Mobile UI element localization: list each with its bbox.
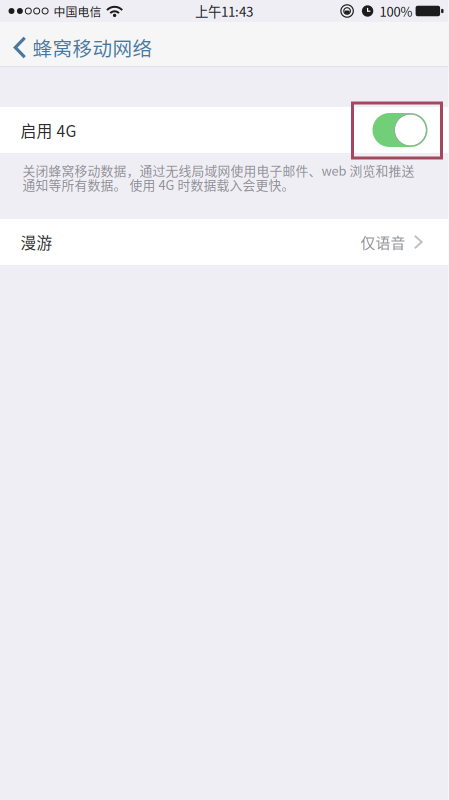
staticText: 100%	[380, 2, 413, 20]
staticText: 仅语音	[360, 231, 405, 253]
staticText: 中国电信	[54, 2, 102, 20]
staticText: 上午11:43	[195, 1, 253, 21]
staticText: 启用 4G	[20, 119, 76, 141]
staticText: 漫游	[20, 231, 52, 253]
staticText: 通知等所有数据。 使用 4G 时数据载入会更快。	[22, 175, 294, 193]
button[interactable]: 蜂窝移动网络	[0, 22, 166, 66]
staticText: 关闭蜂窝移动数据，通过无线局域网使用电子邮件、web 浏览和推送	[22, 161, 414, 179]
button[interactable]: 启用 4G	[0, 107, 448, 153]
staticText: 蜂窝移动网络	[32, 33, 152, 62]
button[interactable]: 漫游	[0, 219, 448, 265]
